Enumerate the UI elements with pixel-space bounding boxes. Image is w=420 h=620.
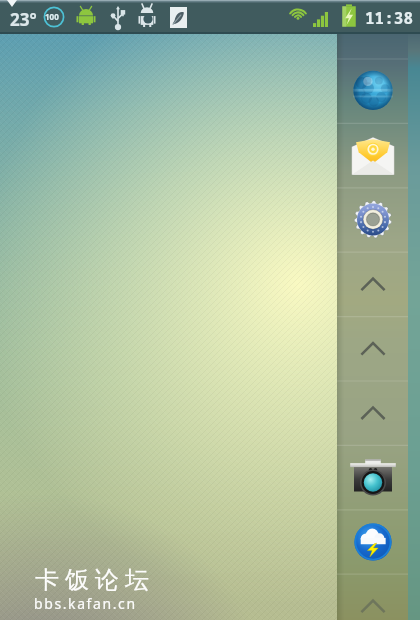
staticText: bbs.kafan.cn	[34, 594, 137, 613]
staticText: 23°	[10, 8, 37, 31]
button[interactable]: Settings	[337, 187, 408, 251]
button[interactable]: Browser	[337, 59, 408, 123]
staticText: 卡饭论坛	[32, 565, 152, 595]
button[interactable]: Add shortcut	[337, 251, 408, 315]
button[interactable]: Email	[337, 123, 408, 187]
button[interactable]: Add shortcut	[337, 571, 408, 620]
staticText: 100	[45, 11, 59, 22]
button[interactable]: Camera	[337, 443, 408, 507]
button[interactable]: Add shortcut	[337, 379, 408, 443]
button[interactable]: Weather	[337, 507, 408, 571]
staticText: 11:38	[365, 7, 414, 29]
button[interactable]: Add shortcut	[337, 315, 408, 379]
